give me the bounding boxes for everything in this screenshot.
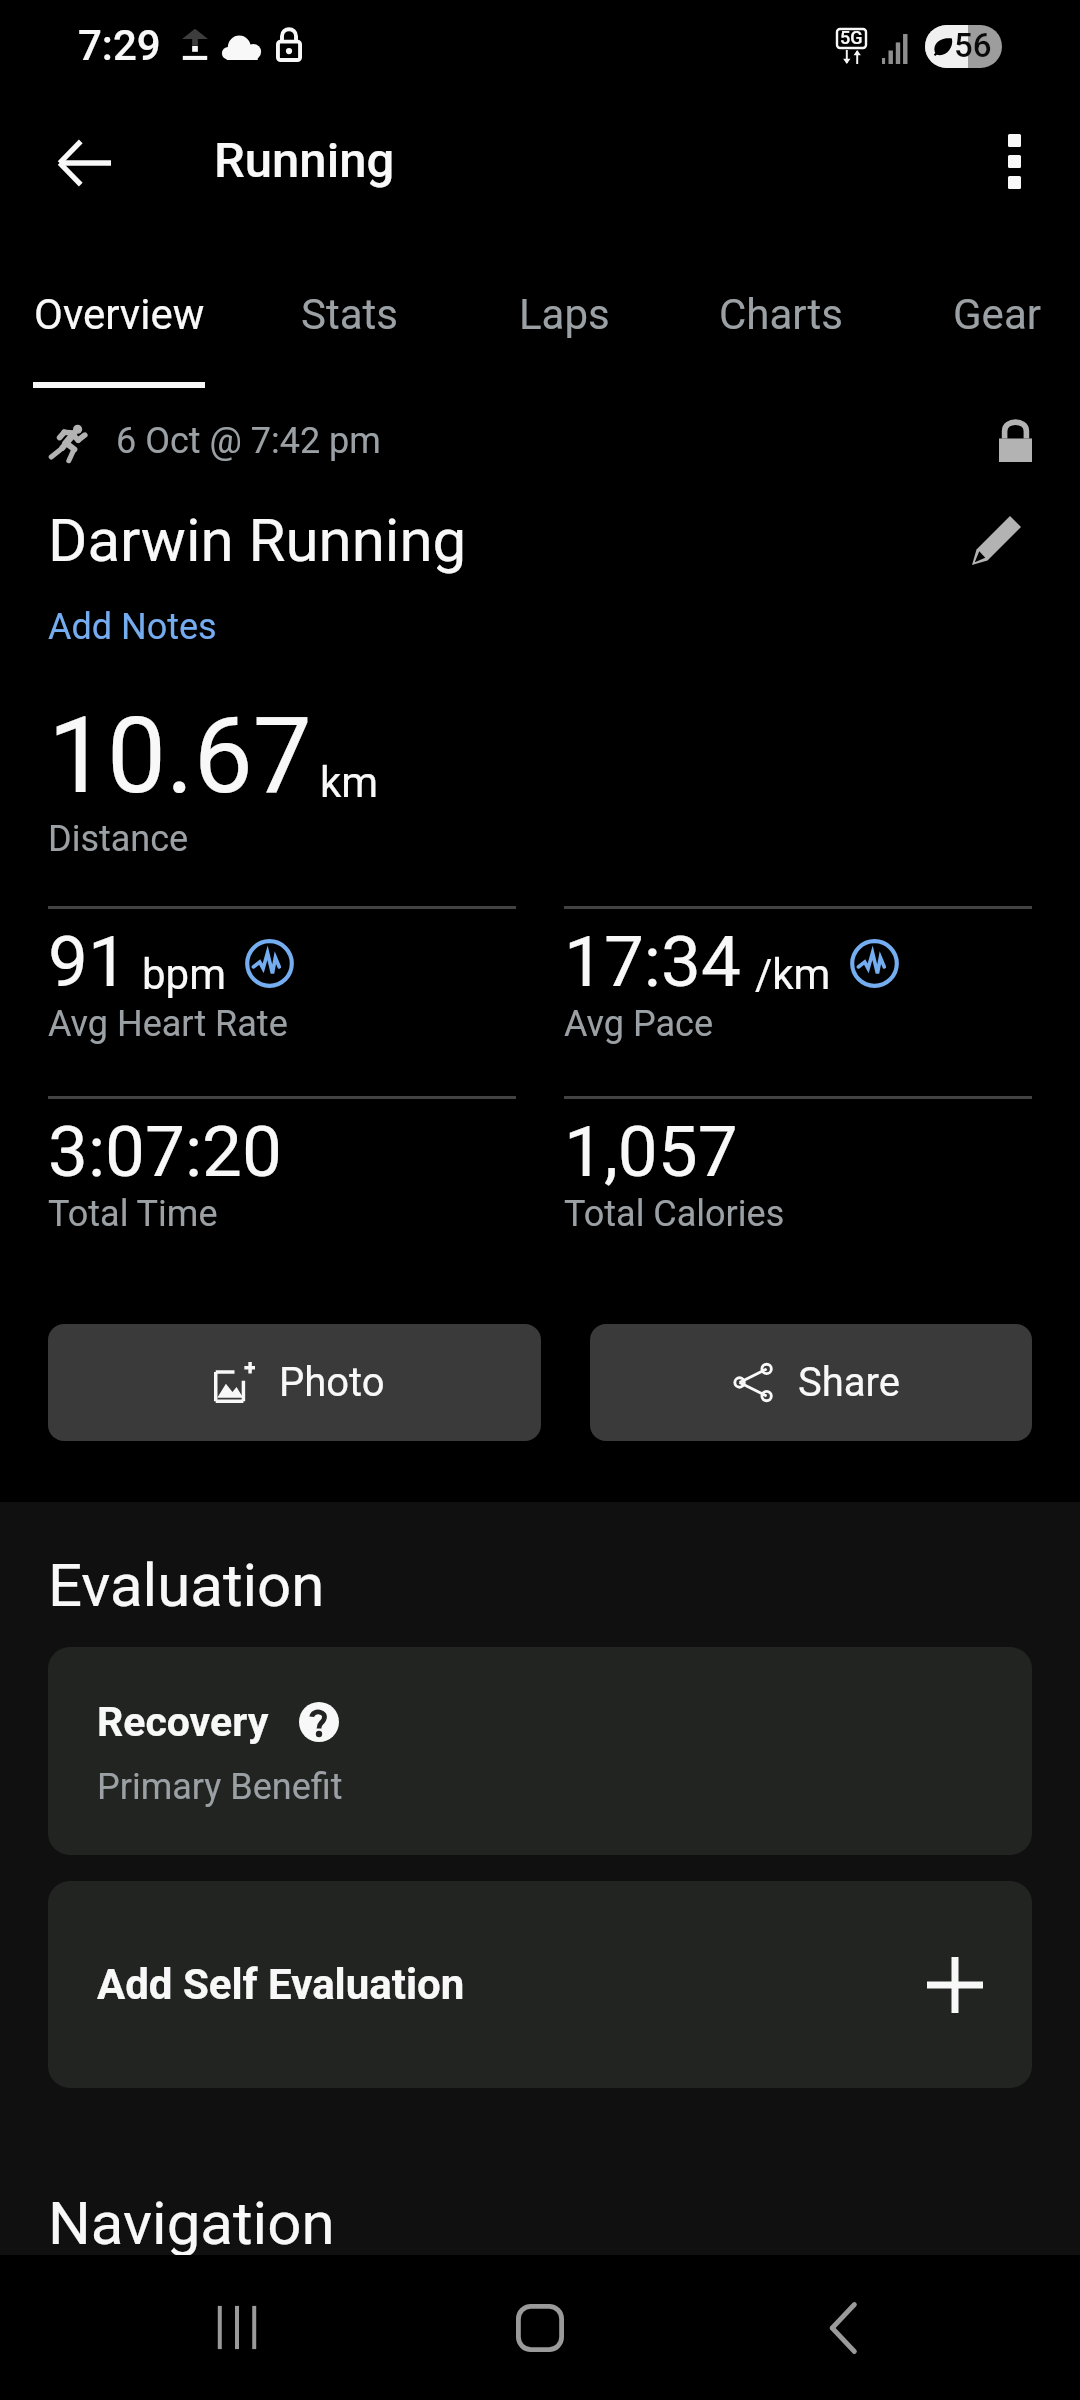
staticText: Darwin Running	[48, 505, 467, 575]
staticText: 7:29	[78, 21, 161, 70]
staticText: km	[320, 758, 379, 807]
button[interactable]: Recovery	[48, 1647, 1032, 1855]
button[interactable]: Stats	[238, 240, 460, 396]
staticText: Share	[798, 1359, 900, 1406]
staticText: Overview	[34, 290, 205, 339]
staticText: 91	[48, 920, 128, 1003]
staticText: Total Time	[48, 1193, 218, 1235]
staticText: 56	[954, 26, 992, 65]
staticText: 1,057	[564, 1110, 738, 1193]
staticText: Running	[214, 132, 395, 189]
staticText: 5G	[840, 27, 863, 48]
staticText: Charts	[719, 290, 843, 339]
staticText: /km	[755, 950, 831, 999]
button[interactable]: Recent apps	[0, 2255, 360, 2400]
staticText: Laps	[519, 290, 610, 339]
staticText: Primary Benefit	[97, 1766, 343, 1808]
button[interactable]: Back	[720, 2255, 1080, 2400]
button[interactable]: Overview	[0, 240, 238, 396]
button[interactable]: Gear	[893, 240, 1080, 396]
button[interactable]: Charts	[668, 240, 893, 396]
button[interactable]: Add Self Evaluation	[48, 1881, 1032, 2088]
button[interactable]: Edit name	[960, 504, 1032, 576]
staticText: Total Calories	[564, 1193, 785, 1235]
staticText: 6 Oct @ 7:42 pm	[116, 420, 381, 462]
button[interactable]: Back	[26, 112, 142, 228]
staticText: Navigation	[48, 2188, 335, 2255]
staticText: Photo	[279, 1359, 385, 1406]
staticText: 3:07:20	[48, 1110, 282, 1193]
staticText: Evaluation	[48, 1550, 325, 1620]
staticText: Avg Pace	[564, 1003, 713, 1045]
button[interactable]: Photo	[48, 1324, 541, 1441]
staticText: Recovery	[97, 1698, 269, 1746]
staticText: Distance	[48, 818, 189, 860]
staticText: Stats	[301, 290, 398, 339]
button[interactable]: Home	[360, 2255, 720, 2400]
staticText: 10.67	[48, 695, 312, 818]
staticText: bpm	[142, 950, 226, 999]
staticText: Gear	[953, 290, 1041, 339]
button[interactable]: Share	[590, 1324, 1032, 1441]
staticText: 17:34	[564, 920, 741, 1003]
staticText: Add Self Evaluation	[97, 1960, 465, 2009]
button[interactable]: More options	[959, 115, 1069, 225]
button[interactable]: Add Notes	[48, 606, 217, 648]
button[interactable]: Laps	[460, 240, 668, 396]
staticText: Avg Heart Rate	[48, 1003, 288, 1045]
